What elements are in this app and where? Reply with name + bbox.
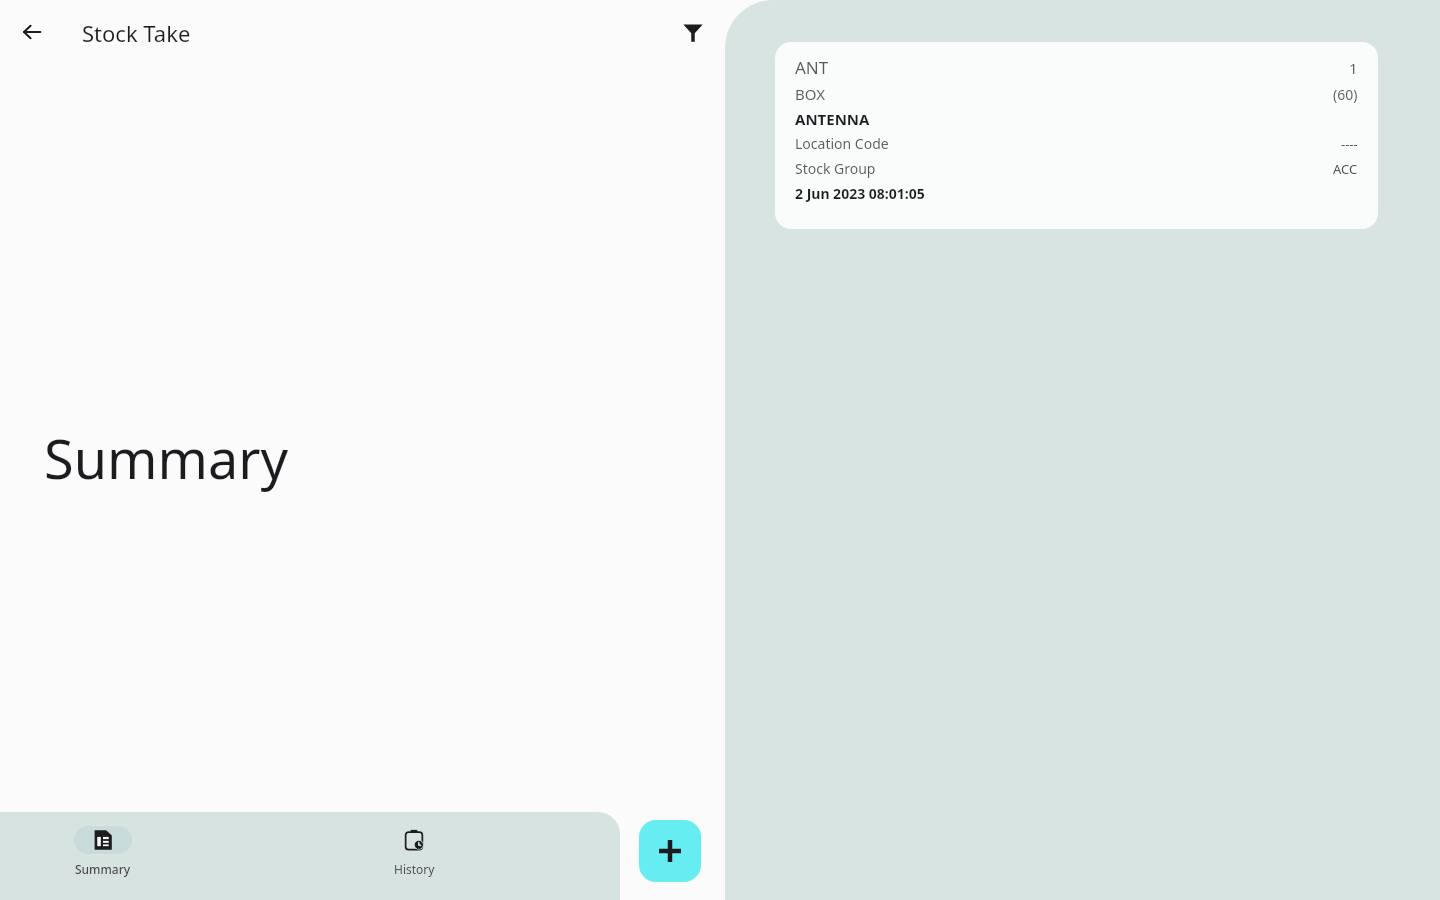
staticText: Stock Group xyxy=(795,159,876,178)
button[interactable]: Add xyxy=(639,820,701,882)
staticText: (60) xyxy=(1333,85,1358,104)
staticText: 1 xyxy=(1349,58,1358,78)
button[interactable]: History xyxy=(362,812,466,900)
staticText: Location Code xyxy=(795,134,889,153)
staticText: History xyxy=(394,861,435,877)
button[interactable]: ANT xyxy=(775,42,1378,229)
staticText: ANTENNA xyxy=(795,109,870,129)
staticText: ACC xyxy=(1333,160,1358,178)
staticText: Stock Take xyxy=(82,18,191,48)
staticText: BOX xyxy=(795,84,825,104)
staticText: Summary xyxy=(75,861,131,877)
staticText: ---- xyxy=(1341,135,1358,153)
button[interactable]: Summary xyxy=(51,812,155,900)
button[interactable]: Filter xyxy=(669,8,717,56)
staticText: Summary xyxy=(44,421,289,495)
staticText: 2 Jun 2023 08:01:05 xyxy=(795,184,925,203)
staticText: ANT xyxy=(795,56,829,79)
button[interactable]: Back xyxy=(8,8,56,56)
